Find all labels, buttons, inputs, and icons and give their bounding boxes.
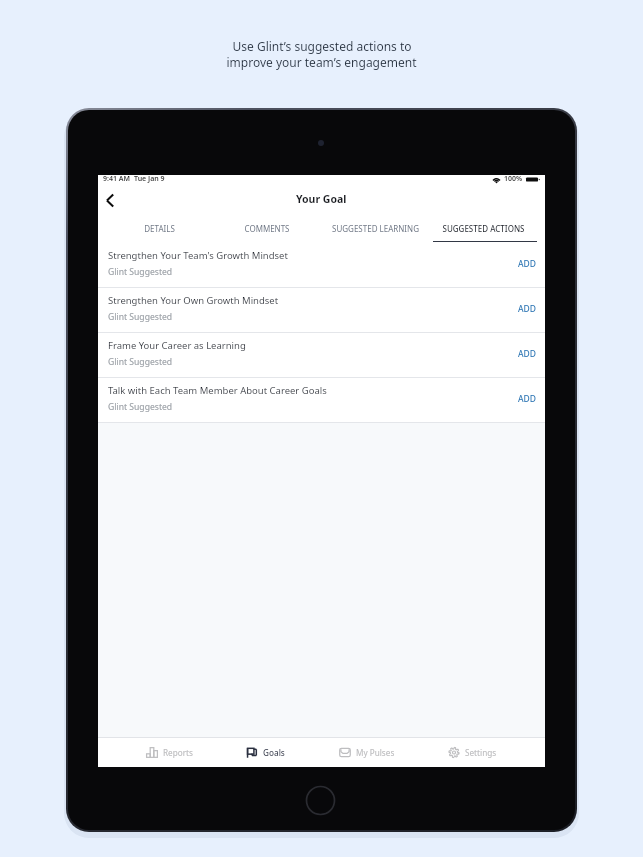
button[interactable]: Strengthen Your Own Growth Mindset xyxy=(98,288,545,333)
staticText: ADD xyxy=(518,303,536,315)
staticText: Frame Your Career as Learning xyxy=(108,339,246,352)
staticText: Strengthen Your Team's Growth Mindset xyxy=(108,249,288,262)
button[interactable]: Strengthen Your Team's Growth Mindset xyxy=(98,243,545,288)
staticText: Use Glint’s suggested actions to xyxy=(232,38,412,54)
staticText: Settings xyxy=(465,747,497,758)
button[interactable]: ADD xyxy=(518,303,536,315)
button[interactable]: My Pulses xyxy=(334,743,400,762)
button[interactable]: ADD xyxy=(518,393,536,405)
staticText: Glint Suggested xyxy=(108,311,173,323)
button[interactable]: ADD xyxy=(518,348,536,360)
staticText: 100% xyxy=(504,174,523,184)
staticText: Talk with Each Team Member About Career … xyxy=(108,384,327,397)
staticText: Tue Jan 9 xyxy=(134,174,165,184)
button[interactable]: COMMENTS xyxy=(213,214,321,243)
button[interactable]: SUGGESTED LEARNING xyxy=(321,214,429,243)
staticText: Glint Suggested xyxy=(108,401,173,413)
staticText: improve your team’s engagement xyxy=(226,54,417,70)
button[interactable]: SUGGESTED ACTIONS xyxy=(429,214,537,243)
staticText: ADD xyxy=(518,348,536,360)
staticText: COMMENTS xyxy=(244,223,290,234)
staticText: ADD xyxy=(518,393,536,405)
staticText: My Pulses xyxy=(356,747,395,758)
staticText: 9:41 AM xyxy=(103,174,130,184)
button[interactable]: Back xyxy=(100,190,120,210)
staticText: Goals xyxy=(263,747,285,758)
staticText: Strengthen Your Own Growth Mindset xyxy=(108,294,279,307)
button[interactable]: Goals xyxy=(241,743,290,762)
staticText: DETAILS xyxy=(144,223,175,234)
button[interactable]: Talk with Each Team Member About Career … xyxy=(98,378,545,423)
staticText: Glint Suggested xyxy=(108,266,173,278)
button[interactable]: Frame Your Career as Learning xyxy=(98,333,545,378)
button[interactable]: DETAILS xyxy=(106,214,213,243)
button[interactable]: Reports xyxy=(141,743,198,762)
staticText: Glint Suggested xyxy=(108,356,173,368)
staticText: ADD xyxy=(518,258,536,270)
button[interactable]: ADD xyxy=(518,258,536,270)
staticText: Reports xyxy=(163,747,193,758)
button[interactable]: Settings xyxy=(443,743,502,762)
staticText: SUGGESTED LEARNING xyxy=(332,223,419,234)
staticText: SUGGESTED ACTIONS xyxy=(442,223,525,234)
staticText: Your Goal xyxy=(296,192,347,206)
